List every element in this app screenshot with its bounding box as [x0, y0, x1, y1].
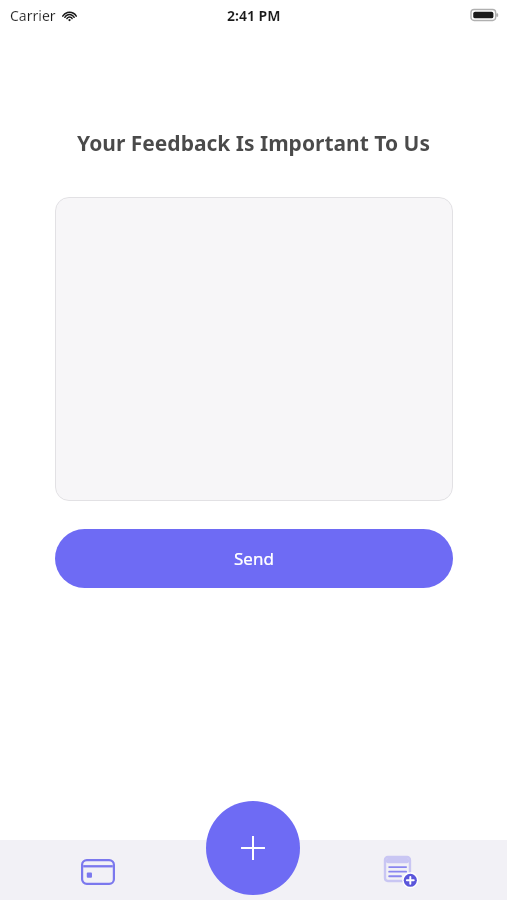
button[interactable]: Add [206, 801, 300, 895]
staticText: Carrier [10, 6, 56, 25]
staticText: Send [234, 547, 274, 570]
button[interactable]: Send [55, 529, 453, 588]
staticText: 2:41 PM [227, 6, 281, 25]
button[interactable]: Cards [62, 848, 134, 896]
button[interactable]: New note [365, 848, 437, 896]
staticText: Your Feedback Is Important To Us [77, 129, 430, 158]
